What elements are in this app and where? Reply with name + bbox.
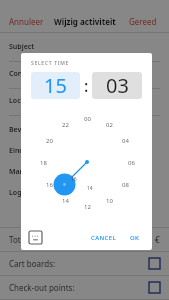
staticText: Cart boards: xyxy=(9,258,56,269)
staticText: Wijzig activiteit xyxy=(54,16,116,27)
staticText: 20 xyxy=(46,137,53,145)
staticText: Bevestigd xyxy=(9,125,43,135)
staticText: : xyxy=(84,75,89,97)
staticText: 16 xyxy=(71,176,77,183)
button[interactable]: 15 xyxy=(31,72,80,99)
staticText: Subject xyxy=(9,42,35,52)
staticText: 12 xyxy=(84,203,91,211)
staticText: CANCEL xyxy=(91,234,117,242)
button[interactable]: CANCEL xyxy=(87,230,121,246)
staticText: 16 xyxy=(46,181,53,189)
staticText: 14 xyxy=(62,197,69,205)
button[interactable]: Cart boards: xyxy=(0,252,169,275)
staticText: OK xyxy=(130,234,140,242)
staticText: Check-out points: xyxy=(9,282,75,293)
staticText: 15 xyxy=(44,72,67,99)
staticText: 08 xyxy=(122,181,129,189)
button[interactable]: 03 xyxy=(92,72,142,99)
staticText: 18 xyxy=(40,159,47,167)
staticText: Gereed xyxy=(129,16,157,27)
staticText: Marge xyxy=(9,167,32,177)
staticText: 02 xyxy=(106,121,113,129)
staticText: 04 xyxy=(122,137,129,145)
staticText: 22 xyxy=(62,121,69,129)
button[interactable]: Check-out points: xyxy=(0,276,169,299)
staticText: € xyxy=(155,234,160,245)
staticText: 14 xyxy=(87,185,93,192)
staticText: SELECT TIME xyxy=(31,60,69,67)
button[interactable]: OK xyxy=(126,230,144,246)
staticText: 03 xyxy=(106,72,129,99)
button[interactable]: Switch to text input xyxy=(29,231,42,244)
staticText: Annuleer xyxy=(9,16,44,27)
staticText: Logboek xyxy=(9,188,39,198)
staticText: 06 xyxy=(128,159,135,167)
button[interactable]: Annuleer xyxy=(0,11,52,32)
staticText: 10 xyxy=(106,197,113,205)
staticText: Locatie xyxy=(9,96,34,106)
staticText: Contact xyxy=(9,69,36,79)
staticText: Totale omzet: xyxy=(9,234,60,245)
button[interactable]: Gereed xyxy=(117,11,169,32)
staticText: 00 xyxy=(84,115,91,123)
staticText: Eindtijd xyxy=(9,146,35,156)
